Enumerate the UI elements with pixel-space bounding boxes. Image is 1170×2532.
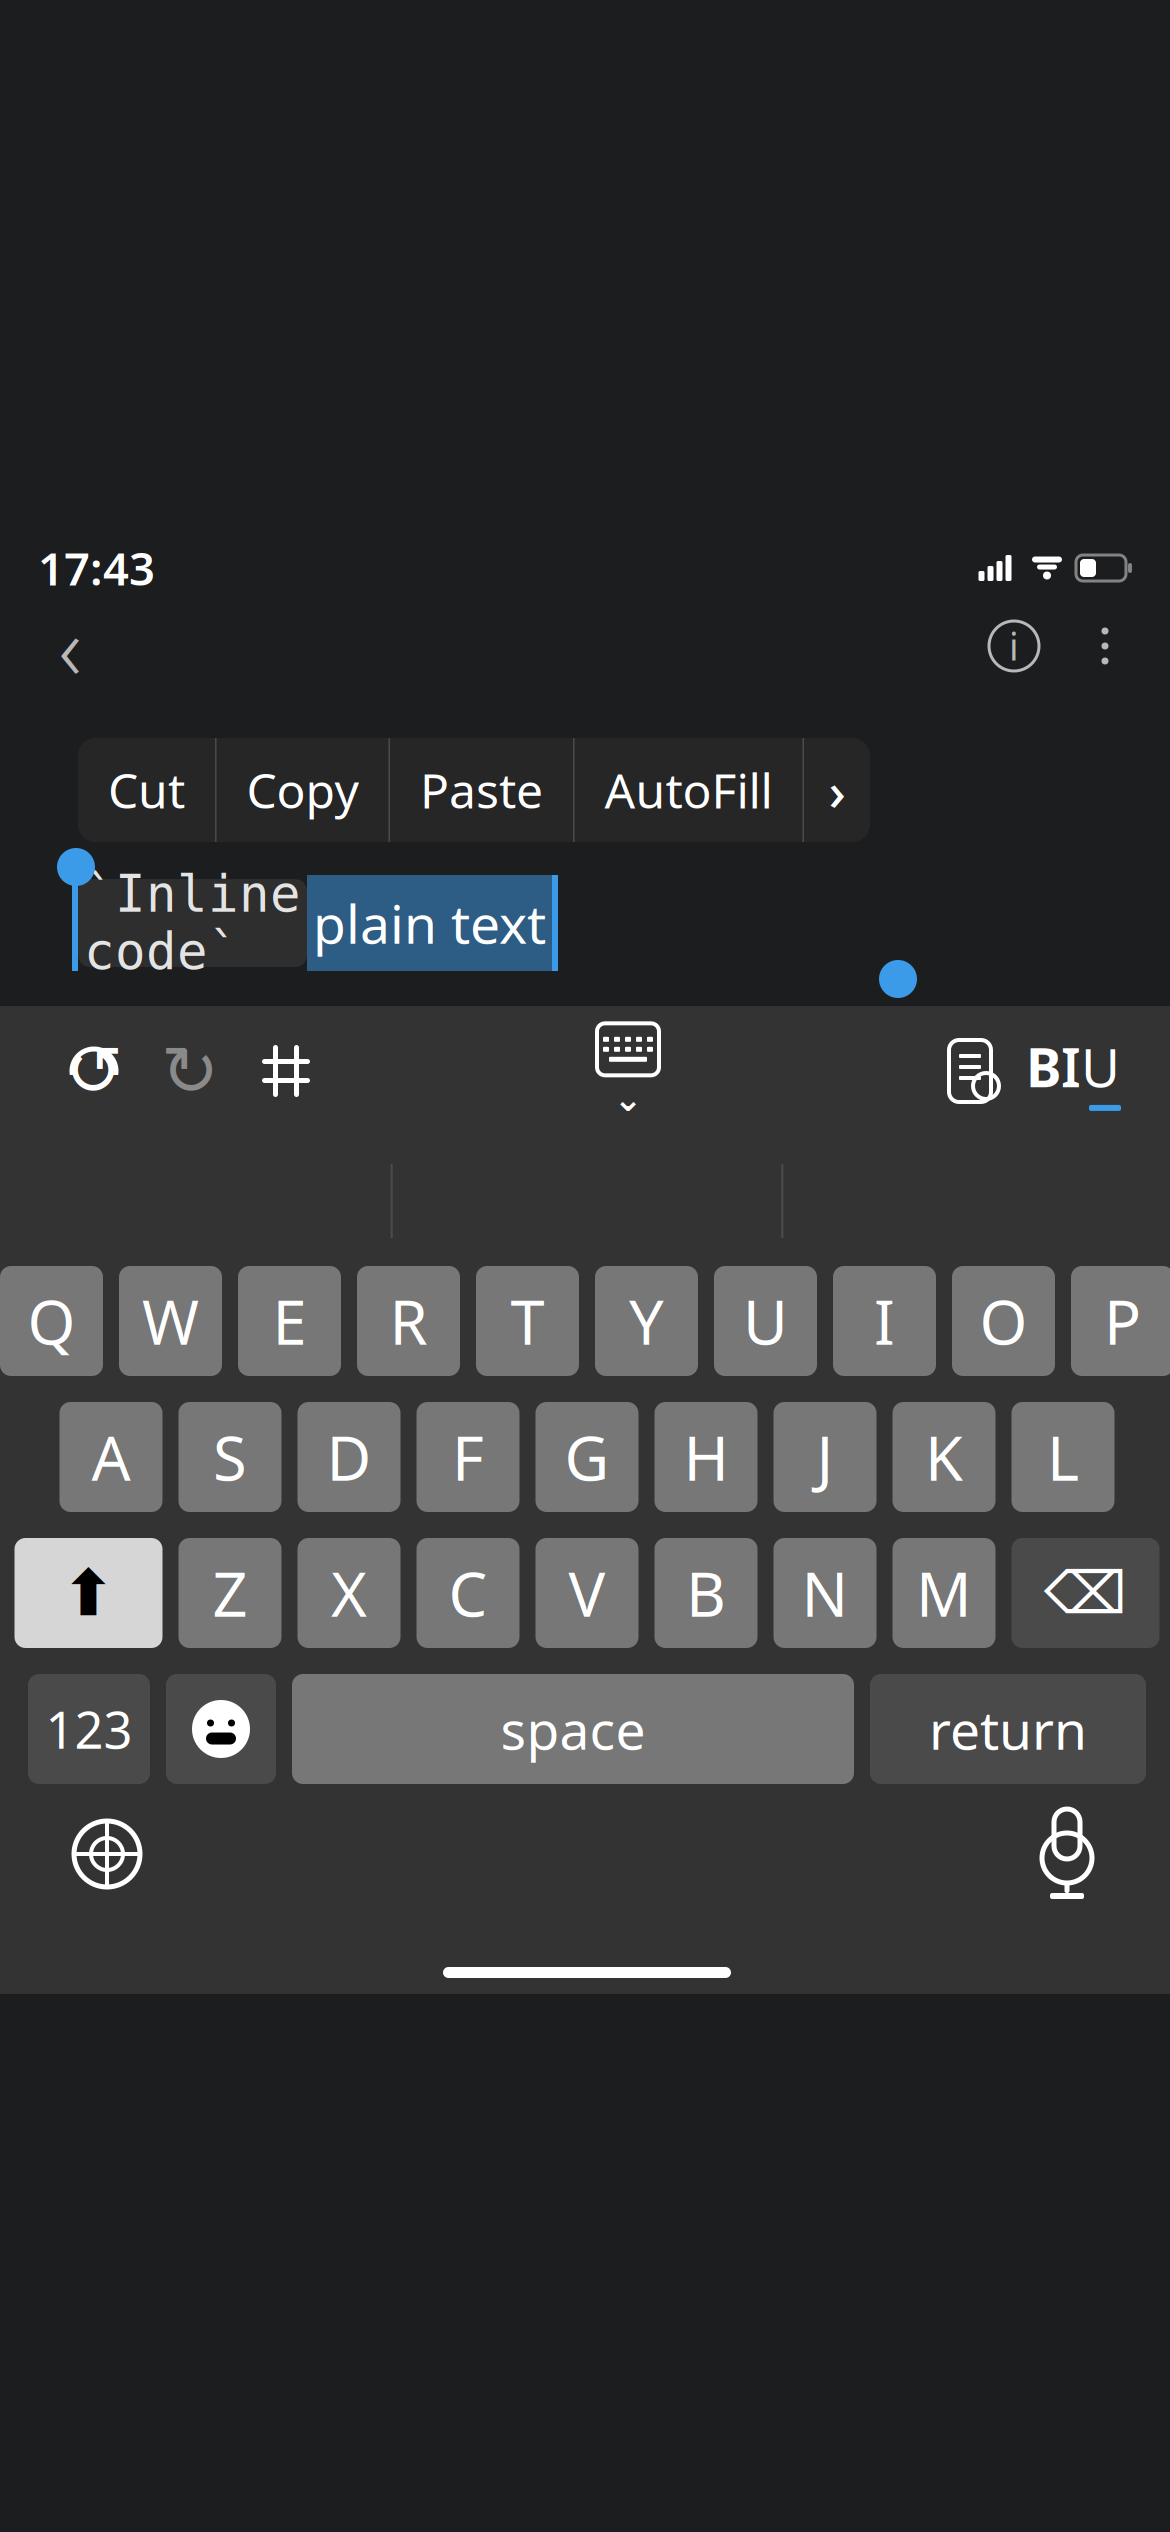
staticText: ↺	[65, 1032, 123, 1110]
button[interactable]: space	[292, 1674, 854, 1784]
staticText: C	[448, 1552, 487, 1634]
button[interactable]: Change keyboard	[52, 1799, 162, 1909]
staticText: ‹	[58, 588, 81, 704]
staticText: AutoFill	[604, 758, 772, 822]
staticText: Copy	[246, 758, 358, 822]
button[interactable]: AutoFill	[574, 738, 802, 842]
button[interactable]: Y	[595, 1266, 698, 1376]
button[interactable]: Bold italic underline	[1018, 1023, 1128, 1119]
staticText: L	[1047, 1416, 1079, 1498]
staticText: E	[272, 1280, 306, 1362]
button[interactable]: Formatting options	[238, 1023, 334, 1119]
button[interactable]: Paste	[390, 738, 573, 842]
button[interactable]: Hide keyboard	[573, 1023, 683, 1119]
staticText: D	[326, 1416, 371, 1498]
button[interactable]: Copy	[216, 738, 388, 842]
staticText: Y	[629, 1280, 664, 1362]
button[interactable]: Delete	[1011, 1538, 1159, 1648]
staticText: Z	[212, 1552, 247, 1634]
staticText: ›	[828, 755, 845, 825]
button[interactable]: 123	[28, 1674, 150, 1784]
button[interactable]: T	[476, 1266, 579, 1376]
staticText: plain text	[313, 888, 546, 958]
staticText: P	[1104, 1280, 1141, 1362]
button[interactable]: Undo	[46, 1023, 142, 1119]
button[interactable]: V	[535, 1538, 638, 1648]
staticText: K	[925, 1416, 963, 1498]
button[interactable]: C	[416, 1538, 519, 1648]
staticText: A	[91, 1416, 130, 1498]
button[interactable]: A	[59, 1402, 162, 1512]
staticText: 123	[45, 1695, 132, 1763]
staticText: W	[142, 1280, 199, 1362]
button[interactable]: G	[535, 1402, 638, 1512]
button[interactable]: Emoji	[166, 1674, 276, 1784]
button[interactable]: S	[178, 1402, 281, 1512]
button[interactable]: Info	[966, 598, 1062, 694]
button[interactable]: O	[952, 1266, 1055, 1376]
button[interactable]: J	[773, 1402, 876, 1512]
button[interactable]: X	[297, 1538, 400, 1648]
staticText: Q	[27, 1280, 75, 1362]
staticText: R	[389, 1280, 427, 1362]
button[interactable]: Cut	[78, 738, 215, 842]
staticText: I	[874, 1280, 895, 1362]
staticText: 17:43	[38, 538, 155, 598]
button[interactable]: N	[773, 1538, 876, 1648]
staticText: S	[213, 1416, 247, 1498]
button[interactable]: return	[870, 1674, 1146, 1784]
staticText: V	[568, 1552, 605, 1634]
staticText: G	[564, 1416, 609, 1498]
staticText: ⌫	[1044, 1560, 1127, 1626]
staticText: i	[1009, 621, 1019, 671]
staticText: ↻	[161, 1032, 219, 1110]
button[interactable]: K	[892, 1402, 995, 1512]
staticText: F	[452, 1416, 484, 1498]
button[interactable]: More	[804, 738, 870, 842]
button[interactable]: Z	[178, 1538, 281, 1648]
button[interactable]: Q	[0, 1266, 103, 1376]
button[interactable]: Dictate	[1012, 1799, 1122, 1909]
staticText: U	[1081, 1031, 1120, 1102]
button[interactable]: B	[654, 1538, 757, 1648]
staticText: Paste	[420, 758, 543, 822]
staticText: ⬆	[61, 1557, 115, 1629]
button[interactable]: Shift	[14, 1538, 162, 1648]
button[interactable]: Attach	[922, 1023, 1018, 1119]
button[interactable]: Back	[22, 598, 118, 694]
button[interactable]: E	[238, 1266, 341, 1376]
staticText: U	[743, 1280, 788, 1362]
staticText: B	[1026, 1031, 1061, 1102]
button[interactable]: U	[714, 1266, 817, 1376]
button[interactable]: R	[357, 1266, 460, 1376]
staticText: T	[510, 1280, 544, 1362]
button[interactable]: F	[416, 1402, 519, 1512]
staticText: J	[816, 1416, 833, 1498]
button[interactable]: H	[654, 1402, 757, 1512]
staticText: M	[916, 1552, 972, 1634]
staticText: X	[331, 1552, 367, 1634]
staticText: O	[979, 1280, 1027, 1362]
staticText: `Inline code`	[84, 865, 301, 980]
button[interactable]: More options	[1062, 598, 1148, 694]
button[interactable]: M	[892, 1538, 995, 1648]
staticText: return	[929, 1694, 1087, 1764]
button[interactable]: L	[1011, 1402, 1114, 1512]
staticText: H	[683, 1416, 728, 1498]
button[interactable]: Redo	[142, 1023, 238, 1119]
button[interactable]: I	[833, 1266, 936, 1376]
staticText: N	[801, 1552, 848, 1634]
staticText: Cut	[108, 758, 185, 822]
staticText: ⌄	[613, 1079, 642, 1119]
button[interactable]: D	[297, 1402, 400, 1512]
staticText: I	[1061, 1031, 1081, 1102]
staticText: space	[500, 1694, 645, 1764]
button[interactable]: P	[1071, 1266, 1170, 1376]
staticText: B	[686, 1552, 726, 1634]
button[interactable]: W	[119, 1266, 222, 1376]
